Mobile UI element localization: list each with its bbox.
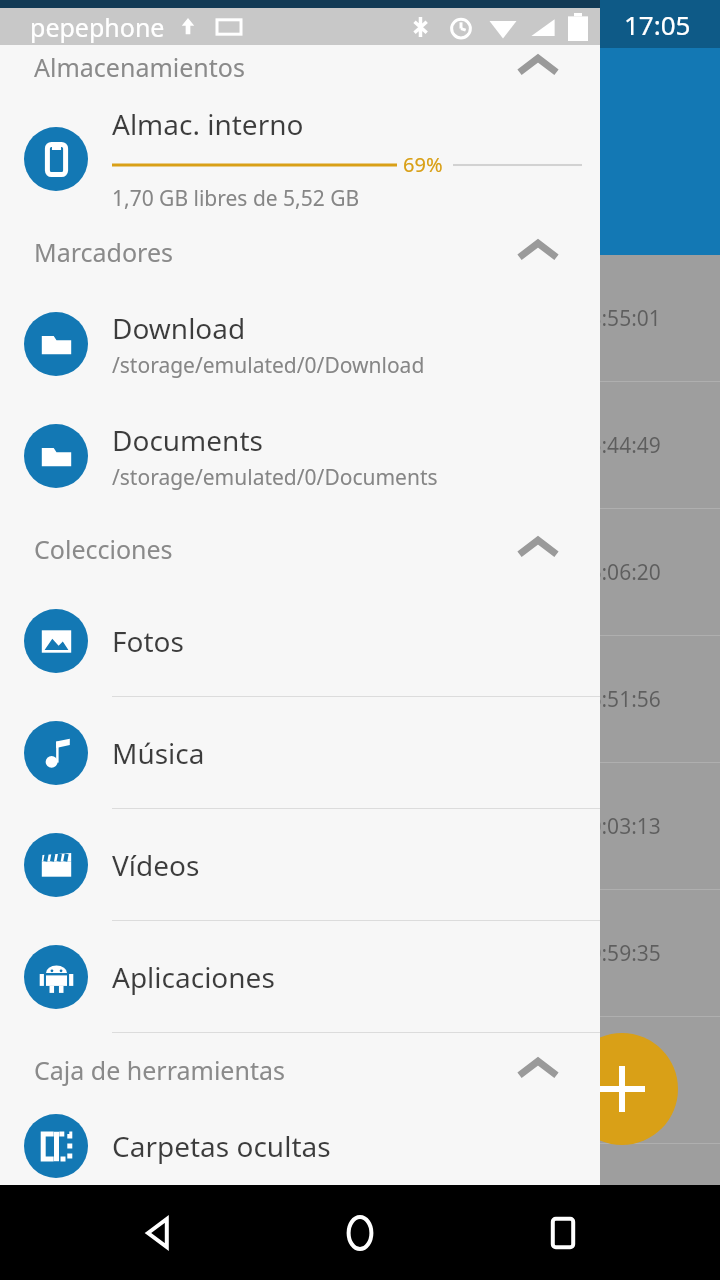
button[interactable]: Colecciones (0, 512, 600, 585)
button[interactable]: Add (566, 1033, 678, 1145)
button[interactable]: Carpetas ocultas (0, 1106, 600, 1185)
staticText: Almacenamientos (34, 50, 245, 84)
staticText: 5 16:06:20 (560, 558, 661, 587)
staticText: 16 0:59:35 (560, 939, 661, 968)
staticText: 17:05 (624, 7, 691, 42)
staticText: Vídeos (112, 846, 200, 884)
button[interactable]: Música (0, 697, 600, 809)
button[interactable]: Marcadores (0, 215, 600, 288)
staticText: /storage/emulated/0/Download (112, 351, 425, 380)
staticText: Documents (112, 421, 263, 459)
staticText: Almac. interno (112, 105, 304, 143)
button[interactable]: Almacenamientos (0, 30, 600, 103)
button[interactable]: Vídeos (0, 809, 600, 921)
button[interactable]: Caja de herramientas (0, 1033, 600, 1106)
button[interactable]: Fotos (0, 585, 600, 697)
staticText: Caja de herramientas (34, 1053, 285, 1087)
button[interactable]: Back (113, 1188, 203, 1278)
staticText: /storage/emulated/0/Documents (112, 463, 438, 492)
staticText: Marcadores (34, 235, 173, 269)
staticText: 5 13:55:01 (560, 304, 661, 333)
button[interactable]: Almac. interno (0, 103, 600, 215)
staticText: pepephone (30, 10, 165, 44)
staticText: 69% (403, 151, 443, 178)
staticText: Fotos (112, 622, 184, 660)
button[interactable]: Home (315, 1188, 405, 1278)
staticText: 1,70 GB libres de 5,52 GB (112, 184, 360, 213)
staticText: Download (112, 309, 246, 347)
staticText: 6 16:51:56 (560, 685, 661, 714)
staticText: 4 20:03:13 (560, 812, 661, 841)
staticText: Música (112, 734, 205, 772)
staticText: Aplicaciones (112, 958, 275, 996)
button[interactable]: Download (0, 288, 600, 400)
staticText: 5 15:44:49 (560, 431, 661, 460)
staticText: Colecciones (34, 532, 173, 566)
button[interactable]: Documents (0, 400, 600, 512)
staticText: Carpetas ocultas (112, 1127, 331, 1165)
button[interactable]: Recents (518, 1188, 608, 1278)
button[interactable]: Aplicaciones (0, 921, 600, 1033)
